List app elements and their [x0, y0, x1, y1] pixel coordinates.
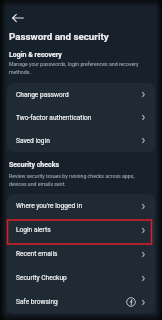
button[interactable]: Safe browsing [7, 290, 155, 314]
button[interactable]: Recent emails [7, 242, 155, 266]
staticText: Saved login [16, 137, 50, 145]
button[interactable]: Saved login [7, 129, 155, 152]
staticText: Review security issues by running checks… [9, 173, 151, 188]
staticText: Two-factor authentication [16, 114, 92, 122]
staticText: Security checks [9, 161, 60, 169]
staticText: Login & recovery [9, 51, 62, 59]
button[interactable]: Change password [7, 83, 155, 106]
button[interactable]: Security Checkup [7, 266, 155, 290]
button[interactable]: Login alerts [7, 218, 155, 242]
staticText: Recent emails [16, 250, 58, 258]
staticText: Where you're logged in [16, 202, 83, 210]
button[interactable]: Back [11, 11, 25, 25]
staticText: Security Checkup [16, 274, 67, 282]
staticText: Safe browsing [16, 298, 58, 306]
button[interactable]: Two-factor authentication [7, 106, 155, 129]
staticText: Manage your passwords, login preferences… [9, 61, 151, 76]
button[interactable]: Where you're logged in [7, 194, 155, 218]
staticText: Change password [16, 91, 69, 99]
staticText: Password and security [9, 31, 109, 42]
staticText: Login alerts [16, 226, 51, 234]
